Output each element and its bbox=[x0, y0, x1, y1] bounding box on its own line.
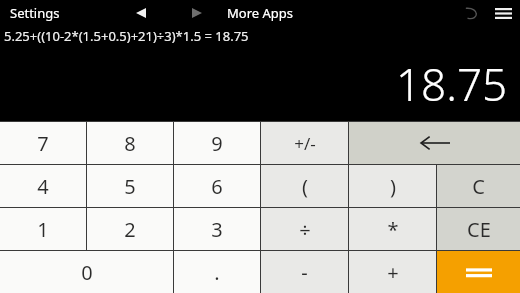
button[interactable]: 5 bbox=[87, 165, 173, 207]
staticText: Settings bbox=[10, 4, 60, 22]
button[interactable]: C bbox=[437, 165, 520, 207]
staticText: CE bbox=[467, 216, 491, 243]
button[interactable]: More Apps bbox=[221, 1, 300, 25]
button[interactable]: - bbox=[261, 251, 348, 293]
staticText: 3 bbox=[211, 216, 223, 243]
staticText: + bbox=[387, 259, 399, 286]
button[interactable]: ( bbox=[261, 165, 348, 207]
button[interactable]: Menu bbox=[490, 0, 516, 26]
staticText: 5 bbox=[124, 173, 136, 200]
button[interactable]: + bbox=[349, 251, 436, 293]
staticText: More Apps bbox=[227, 4, 294, 22]
staticText: 1 bbox=[37, 216, 49, 243]
staticText: . bbox=[214, 259, 220, 286]
button[interactable]: 3 bbox=[174, 208, 260, 250]
staticText: C bbox=[472, 173, 485, 200]
button[interactable]: Next bbox=[186, 2, 208, 24]
staticText: 18.75 bbox=[396, 54, 508, 114]
button[interactable]: Previous bbox=[130, 2, 152, 24]
staticText: * bbox=[387, 216, 399, 243]
staticText: ) bbox=[390, 173, 396, 200]
staticText: 0 bbox=[81, 259, 93, 286]
button[interactable]: 8 bbox=[87, 122, 173, 164]
staticText: 9 bbox=[211, 130, 223, 157]
button[interactable]: Settings bbox=[6, 1, 64, 25]
staticText: ÷ bbox=[299, 216, 311, 243]
button[interactable]: 4 bbox=[0, 165, 86, 207]
button[interactable]: * bbox=[349, 208, 436, 250]
button[interactable]: CE bbox=[437, 208, 520, 250]
staticText: 6 bbox=[211, 173, 223, 200]
staticText: - bbox=[301, 259, 308, 286]
button[interactable]: ÷ bbox=[261, 208, 348, 250]
staticText: ( bbox=[302, 173, 308, 200]
button[interactable]: 0 bbox=[0, 251, 173, 293]
staticText: 2 bbox=[124, 216, 136, 243]
staticText: 8 bbox=[124, 130, 136, 157]
staticText: 4 bbox=[37, 173, 49, 200]
button[interactable]: . bbox=[174, 251, 260, 293]
button[interactable]: Equals bbox=[437, 251, 520, 293]
staticText: +/- bbox=[294, 132, 316, 155]
button[interactable]: 6 bbox=[174, 165, 260, 207]
button[interactable]: 7 bbox=[0, 122, 86, 164]
button[interactable]: 2 bbox=[87, 208, 173, 250]
button[interactable]: ) bbox=[349, 165, 436, 207]
button[interactable]: +/- bbox=[261, 122, 348, 164]
staticText: 5.25+((10-2*(1.5+0.5)+21)÷3)*1.5 = 18.75 bbox=[4, 27, 249, 45]
button[interactable]: 9 bbox=[174, 122, 260, 164]
button[interactable]: 1 bbox=[0, 208, 86, 250]
button[interactable]: Backspace bbox=[349, 122, 520, 164]
staticText: 7 bbox=[37, 130, 49, 157]
button[interactable]: Undo bbox=[460, 1, 484, 25]
